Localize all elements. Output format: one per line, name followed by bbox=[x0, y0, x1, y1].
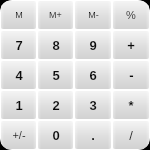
button[interactable]: 0 bbox=[38, 121, 73, 149]
staticText: 4 bbox=[15, 68, 23, 83]
staticText: 6 bbox=[89, 68, 97, 83]
staticText: / bbox=[129, 128, 133, 143]
button[interactable]: M- bbox=[75, 1, 111, 29]
button[interactable]: 5 bbox=[38, 61, 73, 89]
button[interactable]: . bbox=[75, 121, 111, 149]
staticText: % bbox=[126, 9, 136, 21]
staticText: + bbox=[127, 38, 135, 53]
staticText: . bbox=[91, 128, 95, 143]
button[interactable]: % bbox=[113, 1, 149, 29]
staticText: M- bbox=[88, 10, 99, 20]
button[interactable]: M bbox=[1, 1, 36, 29]
button[interactable]: 2 bbox=[38, 91, 73, 119]
staticText: 7 bbox=[15, 38, 23, 53]
staticText: 1 bbox=[15, 98, 23, 113]
staticText: 3 bbox=[89, 98, 97, 113]
button[interactable]: 7 bbox=[1, 31, 36, 59]
staticText: 2 bbox=[52, 98, 60, 113]
staticText: 0 bbox=[52, 128, 60, 143]
button[interactable]: M+ bbox=[38, 1, 73, 29]
staticText: +/- bbox=[12, 129, 26, 141]
staticText: M bbox=[15, 10, 23, 20]
staticText: 8 bbox=[52, 38, 60, 53]
button[interactable]: +/- bbox=[1, 121, 36, 149]
button[interactable]: * bbox=[113, 91, 149, 119]
button[interactable]: + bbox=[113, 31, 149, 59]
staticText: - bbox=[129, 68, 134, 83]
staticText: 5 bbox=[52, 68, 60, 83]
button[interactable]: 8 bbox=[38, 31, 73, 59]
button[interactable]: 4 bbox=[1, 61, 36, 89]
button[interactable]: 6 bbox=[75, 61, 111, 89]
button[interactable]: / bbox=[113, 121, 149, 149]
button[interactable]: 9 bbox=[75, 31, 111, 59]
button[interactable]: - bbox=[113, 61, 149, 89]
staticText: 9 bbox=[89, 38, 97, 53]
button[interactable]: 3 bbox=[75, 91, 111, 119]
button[interactable]: 1 bbox=[1, 91, 36, 119]
staticText: * bbox=[128, 98, 134, 113]
staticText: M+ bbox=[49, 10, 62, 20]
